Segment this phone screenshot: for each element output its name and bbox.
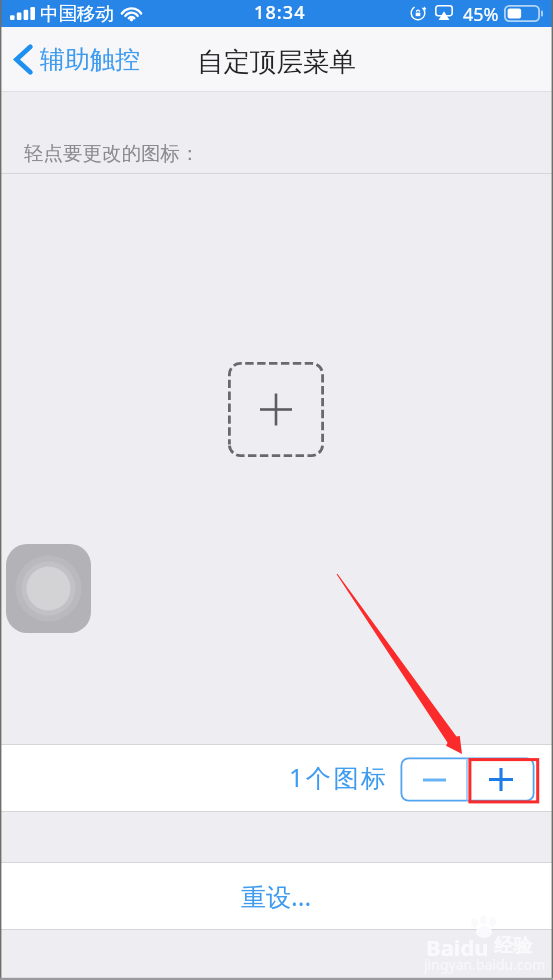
staticText: 辅助触控 — [40, 44, 140, 75]
staticText: Baidu — [426, 932, 489, 962]
button[interactable]: 辅助触控 — [0, 38, 152, 81]
staticText: 1个图标 — [289, 760, 389, 794]
button[interactable]: 重设... — [0, 863, 553, 929]
staticText: 轻点要更改的图标： — [24, 141, 200, 166]
button[interactable]: 添加图标 — [228, 362, 324, 457]
staticText: 重设... — [241, 879, 312, 913]
button[interactable]: 减少 — [401, 758, 467, 801]
button[interactable]: 增加 — [467, 758, 534, 801]
button[interactable]: 辅助触控按钮 — [6, 544, 91, 633]
staticText: jingyan.baidu.com — [424, 955, 546, 974]
staticText: 经验 — [494, 934, 532, 958]
staticText: 45% — [463, 2, 499, 27]
staticText: 自定顶层菜单 — [197, 45, 356, 78]
staticText: 18:34 — [254, 0, 306, 25]
staticText: 中国移动 — [40, 2, 114, 25]
